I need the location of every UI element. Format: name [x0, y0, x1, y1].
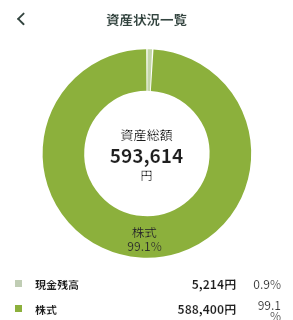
staticText: 99.1% — [0, 237, 291, 254]
staticText: 593,614 — [0, 141, 293, 169]
staticText: 資産総額 — [0, 125, 293, 144]
button[interactable]: 現金残高 — [0, 271, 293, 296]
staticText: 株式 — [0, 222, 291, 240]
staticText: 5,214円 — [136, 275, 236, 292]
staticText: 株式 — [35, 301, 57, 317]
staticText: 99.1% — [248, 296, 281, 320]
button[interactable]: Back — [10, 8, 32, 30]
staticText: 資産状況一覧 — [0, 9, 293, 29]
staticText: 0.9% — [248, 275, 281, 292]
button[interactable]: 株式 — [0, 296, 293, 320]
staticText: 588,400円 — [136, 300, 236, 317]
staticText: 円 — [0, 166, 293, 183]
staticText: 現金残高 — [35, 276, 79, 292]
